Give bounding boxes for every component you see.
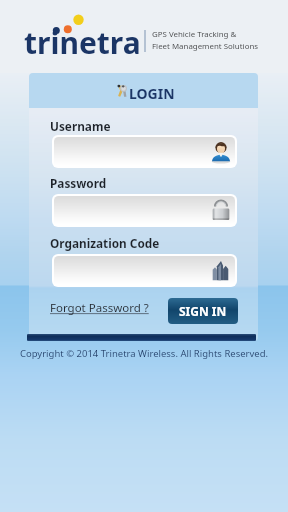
button[interactable]: SIGN IN [168, 298, 238, 324]
staticText: Organization Code [50, 235, 160, 251]
staticText: Fleet Management Solutions [152, 41, 259, 52]
button[interactable]: Password field [54, 196, 235, 225]
staticText: Copyright © 2014 Trinetra Wireless. All … [0, 347, 288, 360]
button[interactable]: Organization code field [54, 256, 235, 285]
staticText: trinetra [24, 22, 141, 63]
staticText: SIGN IN [179, 303, 227, 319]
staticText: LOGIN [129, 84, 175, 103]
button[interactable]: Username field [54, 137, 235, 166]
staticText: Password [50, 175, 107, 191]
staticText: GPS Vehicle Tracking & [152, 29, 237, 40]
button[interactable]: Forgot Password ? [50, 300, 149, 316]
staticText: Username [50, 118, 111, 134]
